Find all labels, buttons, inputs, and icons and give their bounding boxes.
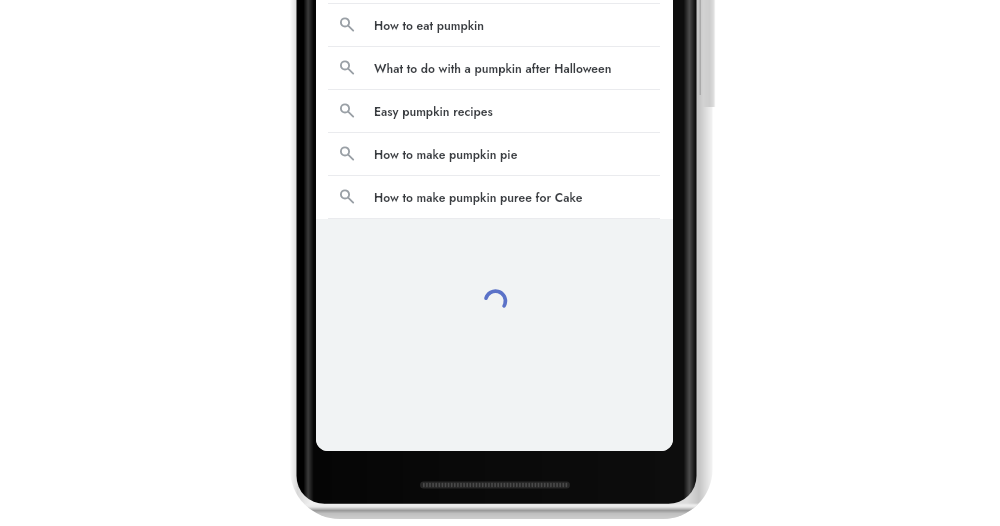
other: Search xyxy=(338,144,355,161)
staticText: How to make pumpkin pie xyxy=(374,146,518,163)
staticText: Easy pumpkin recipes xyxy=(374,103,493,120)
other: Search xyxy=(338,15,355,32)
other: Search xyxy=(338,187,355,204)
staticText: What to do with a pumpkin after Hallowee… xyxy=(374,60,612,77)
staticText: How to make pumpkin puree for Cake xyxy=(374,189,583,206)
button[interactable]: Search xyxy=(316,4,673,47)
button[interactable]: Search xyxy=(316,90,673,133)
button[interactable]: Search xyxy=(316,47,673,90)
other: Search xyxy=(338,101,355,118)
other: Search xyxy=(338,58,355,75)
other: Loading results xyxy=(316,219,673,451)
button[interactable]: Search xyxy=(316,176,673,219)
button[interactable]: Search xyxy=(316,133,673,176)
staticText: How to eat pumpkin xyxy=(374,17,485,34)
